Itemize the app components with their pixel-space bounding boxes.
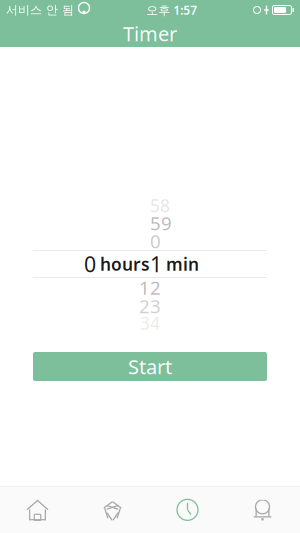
staticText: 3 <box>150 294 161 318</box>
button[interactable]: Alerts <box>225 487 300 533</box>
button[interactable]: Timer <box>150 487 225 533</box>
staticText: 1 <box>150 250 162 278</box>
staticText: 2 <box>139 294 150 318</box>
button[interactable]: Home <box>0 487 75 533</box>
staticText: min <box>166 252 199 275</box>
staticText: 서비스 안 됨 <box>6 3 74 17</box>
button[interactable]: Favorites <box>75 487 150 533</box>
staticText: Timer <box>123 20 177 47</box>
staticText: 1 <box>139 275 150 300</box>
button[interactable]: Start <box>33 352 267 381</box>
staticText: 59 <box>150 211 172 235</box>
staticText: 0 <box>84 250 96 278</box>
staticText: 오후 1:57 <box>146 2 197 18</box>
staticText: 2 <box>150 275 161 300</box>
staticText: 3 <box>140 311 150 334</box>
staticText: 58 <box>150 194 170 217</box>
staticText: Start <box>128 353 172 380</box>
staticText: 0 <box>150 229 161 253</box>
staticText: 4 <box>150 311 160 334</box>
staticText: hours <box>100 252 150 275</box>
